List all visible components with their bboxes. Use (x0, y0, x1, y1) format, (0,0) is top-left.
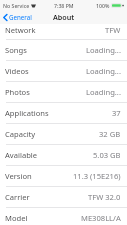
staticText: No Service (3, 2, 30, 9)
button[interactable]: Capacity (0, 124, 127, 145)
staticText: About (53, 12, 75, 22)
staticText: ME308LL/A (81, 213, 121, 223)
button[interactable]: Available (0, 145, 127, 166)
button[interactable]: Applications (0, 103, 127, 124)
staticText: TFW (105, 25, 121, 35)
staticText: Loading... (86, 87, 121, 97)
button[interactable]: Version (0, 166, 127, 187)
staticText: Version (5, 171, 32, 181)
staticText: 5.03 GB (93, 150, 121, 160)
staticText: Carrier (5, 192, 30, 202)
staticText: 11.3 (15E216) (73, 171, 121, 181)
staticText: 37 (112, 108, 121, 118)
staticText: Model (5, 213, 28, 223)
button[interactable]: Network (0, 24, 127, 40)
staticText: Photos (5, 87, 30, 97)
staticText: TFW 32.0 (88, 192, 121, 202)
staticText: Network (5, 25, 36, 35)
button[interactable]: Videos (0, 61, 127, 82)
button[interactable]: Photos (0, 82, 127, 103)
button[interactable]: Carrier (0, 187, 127, 208)
staticText: 7:38 PM (54, 2, 74, 9)
staticText: Loading... (86, 66, 121, 76)
staticText: 100% (96, 2, 110, 9)
staticText: Videos (5, 66, 29, 76)
staticText: 32 GB (99, 129, 121, 139)
staticText: Capacity (5, 129, 36, 139)
staticText: General (9, 13, 32, 21)
staticText: Applications (5, 108, 49, 118)
staticText: Loading... (86, 45, 121, 55)
staticText: Songs (5, 45, 27, 55)
staticText: Available (5, 150, 38, 160)
button[interactable]: Back to General (0, 12, 36, 22)
button[interactable]: Model (0, 208, 127, 225)
button[interactable]: Songs (0, 40, 127, 61)
